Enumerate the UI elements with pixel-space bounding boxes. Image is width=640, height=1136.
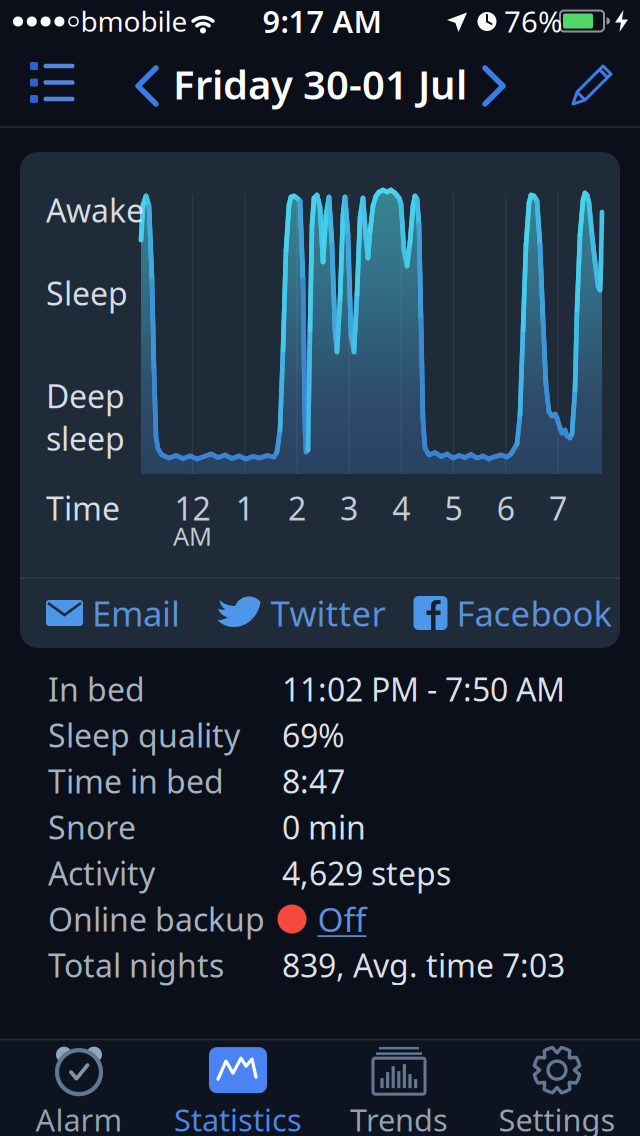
button[interactable]: Trends — [321, 1047, 476, 1136]
staticText: 76% — [504, 1, 562, 40]
button[interactable]: Alarm — [1, 1047, 156, 1136]
button[interactable]: Next night — [482, 66, 506, 106]
staticText: Total nights — [48, 944, 224, 986]
staticText: Trends — [350, 1099, 448, 1136]
staticText: Deep sleep — [46, 374, 125, 459]
staticText: Friday 30-01 Jul — [173, 57, 467, 110]
staticText: Awake — [46, 189, 144, 231]
staticText: 12 — [174, 487, 210, 529]
staticText: 839, Avg. time 7:03 — [282, 944, 565, 986]
staticText: Email — [92, 590, 180, 636]
staticText: AM — [173, 519, 212, 553]
staticText: Facebook — [456, 590, 612, 636]
button[interactable]: Off — [277, 897, 366, 941]
staticText: 4 — [392, 487, 410, 529]
staticText: 4,629 steps — [282, 852, 451, 894]
staticText: Activity — [48, 852, 155, 894]
staticText: 69% — [282, 714, 345, 756]
staticText: 5 — [444, 487, 462, 529]
staticText: Alarm — [35, 1099, 122, 1136]
staticText: 0 min — [282, 806, 366, 848]
staticText: 8:47 — [282, 760, 345, 802]
staticText: bmobile — [80, 2, 187, 40]
staticText: In bed — [48, 668, 145, 710]
staticText: Off — [317, 897, 366, 941]
staticText: 9:17 AM — [262, 1, 381, 41]
staticText: Statistics — [174, 1099, 302, 1136]
button[interactable]: Twitter — [216, 590, 385, 636]
button[interactable]: Previous night — [135, 66, 159, 106]
button[interactable]: Statistics — [160, 1047, 315, 1136]
staticText: Twitter — [270, 590, 385, 636]
button[interactable]: Email — [46, 590, 180, 636]
staticText: 11:02 PM - 7:50 AM — [282, 668, 565, 710]
button[interactable]: Edit — [569, 58, 617, 106]
staticText: 1 — [236, 487, 254, 529]
button[interactable]: Facebook — [413, 590, 612, 636]
staticText: Online backup — [48, 898, 265, 940]
staticText: Sleep — [46, 272, 128, 314]
staticText: Snore — [48, 806, 136, 848]
staticText: Sleep quality — [48, 714, 240, 756]
staticText: Settings — [498, 1099, 615, 1136]
staticText: 2 — [288, 487, 306, 529]
button[interactable]: Settings — [479, 1047, 634, 1136]
staticText: 7 — [549, 487, 567, 529]
staticText: 6 — [497, 487, 515, 529]
staticText: Time — [46, 487, 120, 529]
button[interactable]: Menu — [28, 62, 76, 104]
staticText: 3 — [340, 487, 358, 529]
staticText: Time in bed — [48, 760, 224, 802]
